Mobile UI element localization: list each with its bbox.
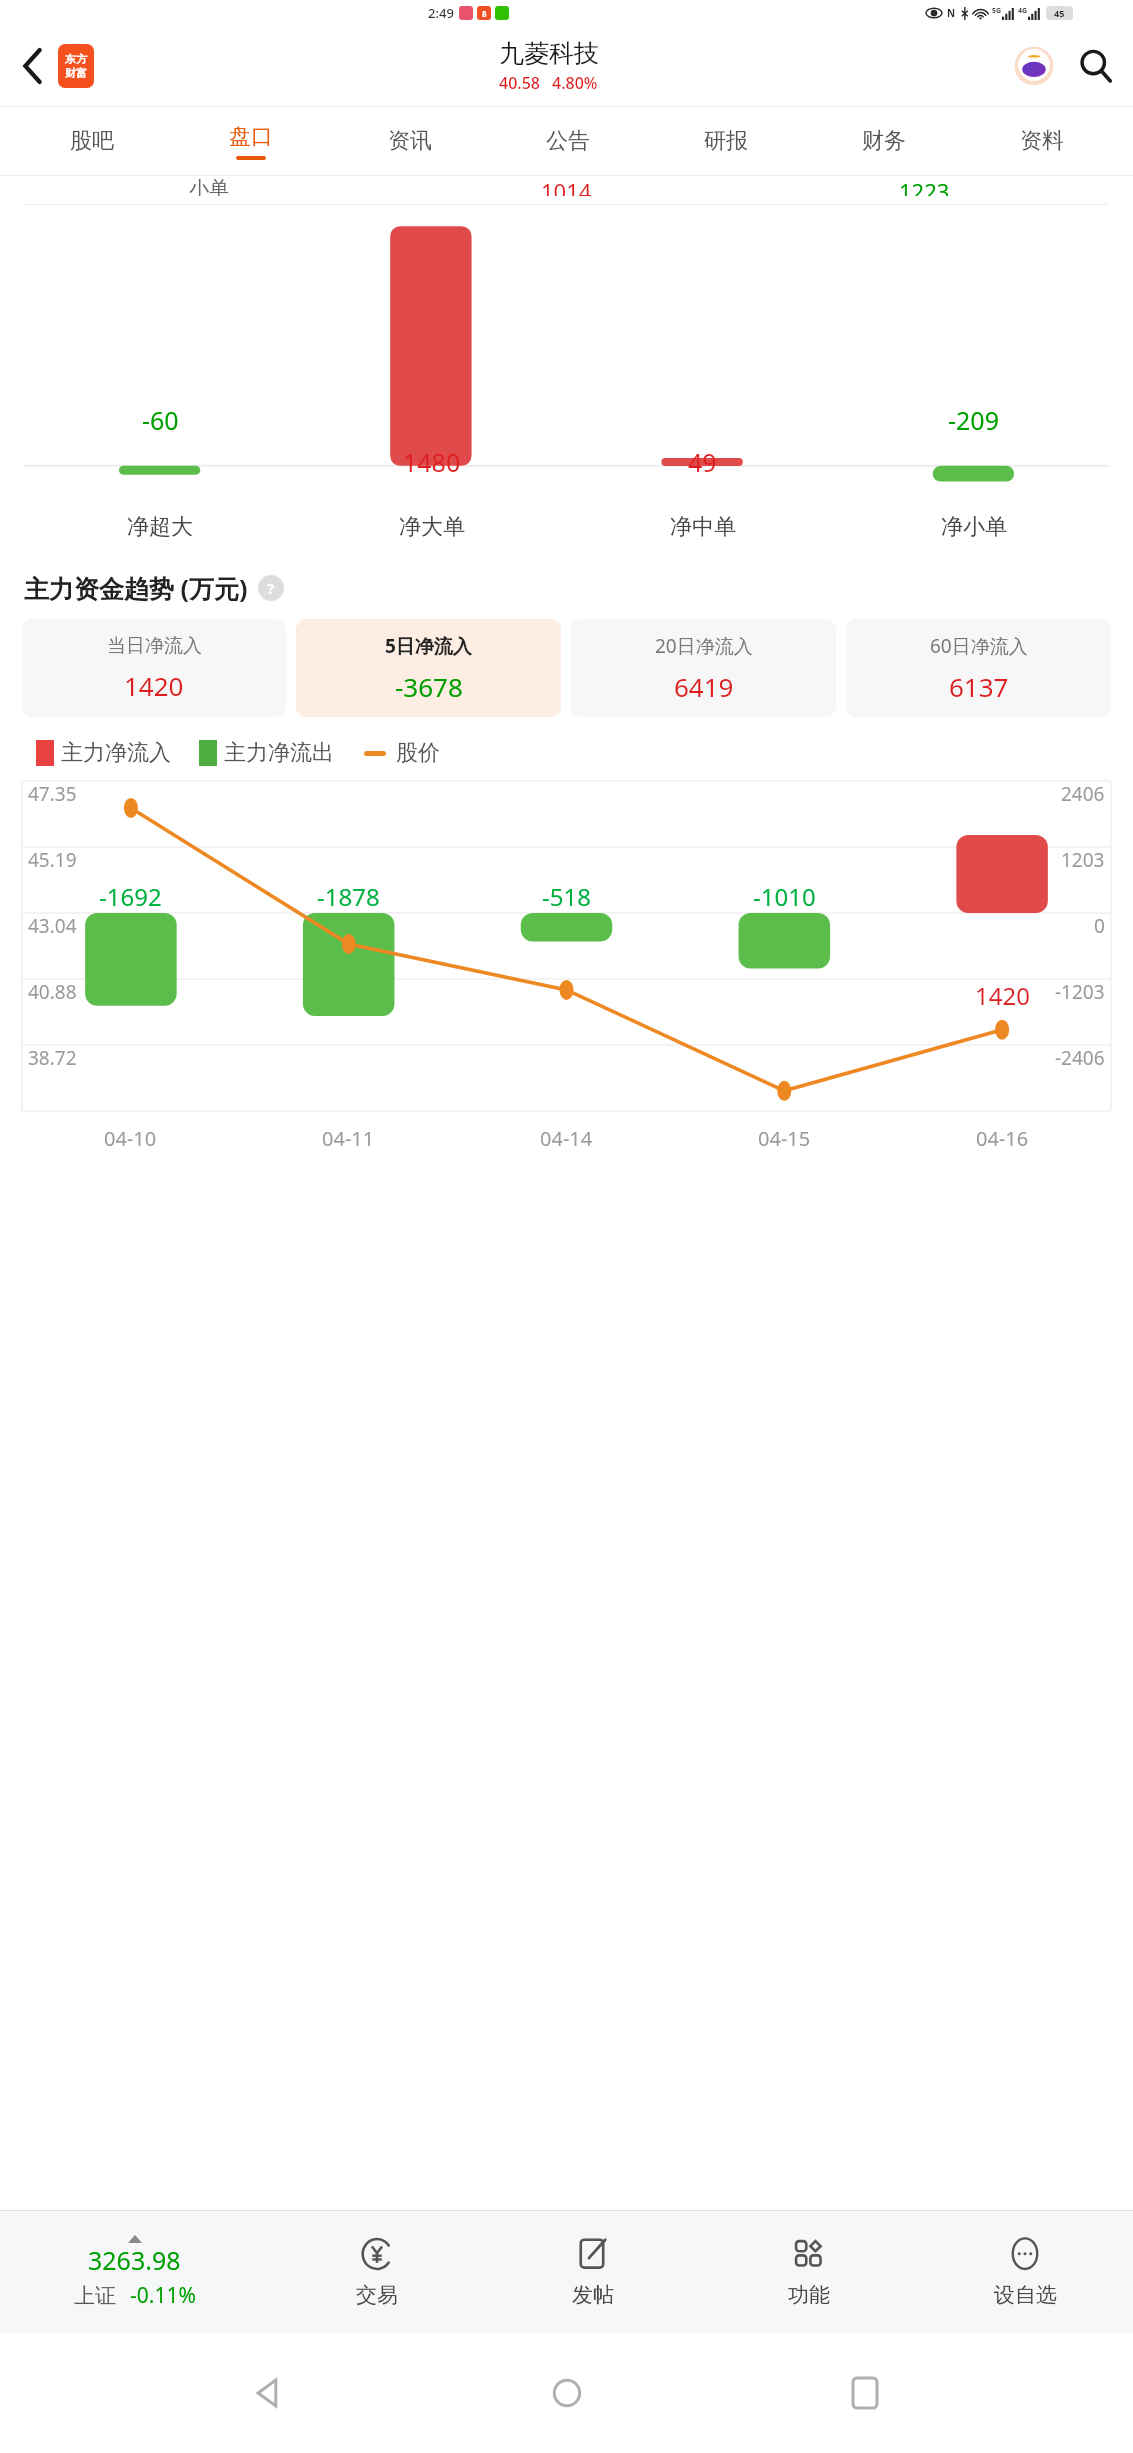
staticText: 60日净流入 xyxy=(930,633,1028,659)
staticText: 43.04 xyxy=(28,913,77,939)
staticText: 04-11 xyxy=(322,1125,375,1152)
staticText: 净中单 xyxy=(670,513,736,541)
button[interactable]: 当日净流入 xyxy=(22,619,286,717)
staticText: 资讯 xyxy=(388,127,432,155)
staticText: 0 xyxy=(1094,913,1105,939)
button[interactable]: 设自选 xyxy=(917,2211,1133,2333)
staticText: 股吧 xyxy=(70,127,114,155)
button[interactable]: 60日净流入 xyxy=(846,619,1111,717)
staticText: 2406 xyxy=(1061,781,1105,807)
staticText: 净大单 xyxy=(399,513,465,541)
staticText: 公告 xyxy=(546,127,590,155)
staticText: 股价 xyxy=(396,739,440,767)
staticText: 1014 xyxy=(541,176,592,196)
staticText: 20日净流入 xyxy=(655,633,753,659)
staticText: 主力资金趋势 (万元) xyxy=(24,571,248,605)
button[interactable]: 帮助 xyxy=(258,575,284,601)
button[interactable]: 20日净流入 xyxy=(571,619,836,717)
staticText: 当日净流入 xyxy=(107,634,202,658)
staticText: 04-15 xyxy=(758,1125,811,1152)
staticText: 1420 xyxy=(124,668,184,703)
staticText: 功能 xyxy=(788,2282,830,2308)
staticText: 8 xyxy=(482,8,487,19)
button[interactable]: Home xyxy=(537,2363,597,2423)
button[interactable]: 公告 xyxy=(489,107,647,175)
staticText: 1203 xyxy=(1061,847,1105,873)
button[interactable]: 盘口 xyxy=(171,107,330,175)
button[interactable]: 财务 xyxy=(805,107,963,175)
staticText: 财富 xyxy=(65,66,87,80)
button[interactable]: 发帖 xyxy=(485,2211,701,2333)
staticText: 净超大 xyxy=(127,513,193,541)
staticText: 6137 xyxy=(949,669,1009,704)
staticText: 发帖 xyxy=(572,2282,614,2308)
staticText: -1878 xyxy=(317,880,380,913)
staticText: ? xyxy=(267,578,275,598)
staticText: -518 xyxy=(542,880,591,913)
staticText: 45.19 xyxy=(28,847,77,873)
staticText: 5G xyxy=(992,6,1002,16)
staticText: 2:49 xyxy=(428,4,454,22)
staticText: N xyxy=(947,6,956,20)
staticText: 49 xyxy=(688,445,717,479)
staticText: 交易 xyxy=(356,2282,398,2308)
staticText: 04-10 xyxy=(104,1125,157,1152)
button[interactable]: 股吧 xyxy=(12,107,171,175)
staticText: 3263.98 xyxy=(88,2243,181,2277)
staticText: 设自选 xyxy=(994,2282,1057,2308)
staticText: 4.80% xyxy=(552,72,598,94)
button[interactable]: AI助手 xyxy=(1003,35,1065,97)
button[interactable]: 功能 xyxy=(701,2211,917,2333)
staticText: 资料 xyxy=(1020,127,1064,155)
button[interactable]: 5日净流入 xyxy=(296,619,561,717)
staticText: 上证 xyxy=(74,2283,116,2309)
button[interactable]: 交易 xyxy=(269,2211,485,2333)
button[interactable]: 3263.98 xyxy=(0,2211,269,2333)
staticText: 盘口 xyxy=(229,123,273,151)
staticText: 东方 xyxy=(65,52,87,66)
staticText: 1480 xyxy=(403,445,461,479)
staticText: -60 xyxy=(142,403,179,437)
staticText: 40.58 xyxy=(499,72,540,94)
staticText: 主力净流出 xyxy=(224,739,334,767)
staticText: -209 xyxy=(948,403,999,437)
staticText: 04-14 xyxy=(540,1125,593,1152)
staticText: -1010 xyxy=(753,880,816,913)
button[interactable]: Back xyxy=(238,2363,298,2423)
button[interactable]: 资料 xyxy=(963,107,1121,175)
button[interactable]: Recents xyxy=(835,2363,895,2423)
staticText: -1692 xyxy=(99,880,162,913)
button[interactable]: Back xyxy=(6,40,58,92)
staticText: 6419 xyxy=(674,669,734,704)
staticText: 1223 xyxy=(899,176,950,196)
button[interactable]: Search xyxy=(1065,35,1127,97)
staticText: 主力净流入 xyxy=(61,739,171,767)
button[interactable]: 东方财富 xyxy=(58,44,94,88)
staticText: -1203 xyxy=(1055,979,1105,1005)
staticText: 04-16 xyxy=(976,1125,1029,1152)
staticText: 40.88 xyxy=(28,979,77,1005)
staticText: 47.35 xyxy=(28,781,77,807)
button[interactable]: 研报 xyxy=(647,107,805,175)
staticText: 4G xyxy=(1018,6,1028,16)
staticText: -2406 xyxy=(1055,1045,1105,1071)
staticText: 38.72 xyxy=(28,1045,77,1071)
staticText: 1420 xyxy=(975,979,1030,1012)
staticText: -3678 xyxy=(395,669,463,704)
button[interactable]: 资讯 xyxy=(330,107,489,175)
staticText: 财务 xyxy=(862,127,906,155)
staticText: 净小单 xyxy=(941,513,1007,541)
staticText: -0.11% xyxy=(130,2281,196,2310)
staticText: 5日净流入 xyxy=(385,633,472,659)
staticText: 研报 xyxy=(704,127,748,155)
staticText: 九菱科技 xyxy=(499,38,599,69)
staticText: 小单 xyxy=(189,176,229,196)
staticText: 45 xyxy=(1054,7,1065,19)
